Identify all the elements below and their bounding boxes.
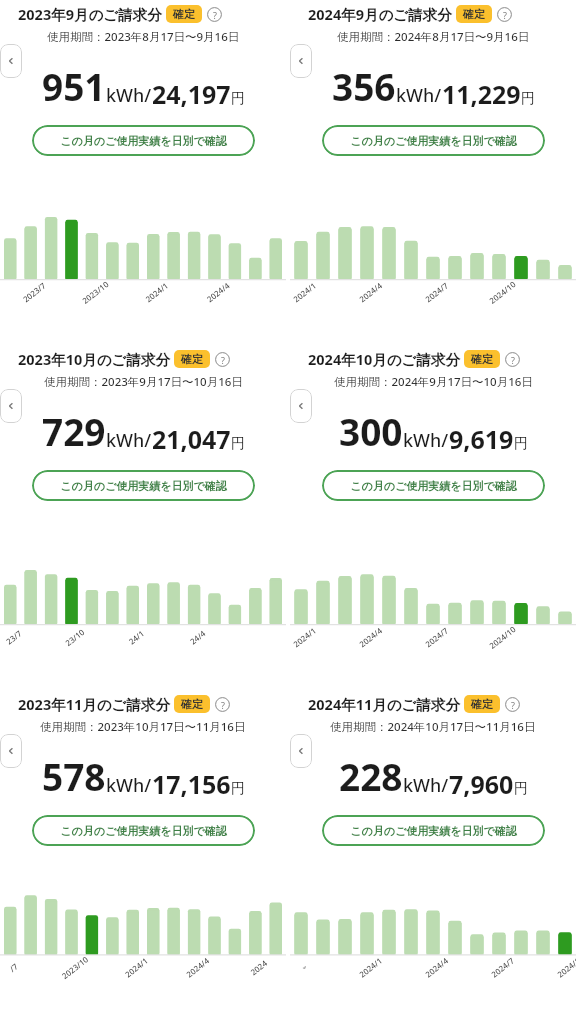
button[interactable]: 確定 — [464, 350, 500, 368]
button[interactable]: ヘルプ — [497, 7, 512, 22]
staticText: 円 — [521, 90, 535, 108]
button[interactable]: 前へ — [0, 734, 22, 768]
button[interactable]: この月のご使用実績を日別で確認 — [322, 470, 545, 501]
staticText: この月のご使用実績を日別で確認 — [60, 824, 227, 838]
button[interactable]: 前へ — [0, 389, 22, 423]
button[interactable]: この月のご使用実績を日別で確認 — [32, 125, 255, 156]
button[interactable]: この月のご使用実績を日別で確認 — [32, 815, 255, 846]
staticText: kWh/ — [106, 773, 152, 798]
staticText: 使用期間：2024年10月17日〜11月16日 — [330, 719, 536, 735]
staticText: 9,619 — [449, 422, 514, 456]
staticText: kWh/ — [403, 428, 449, 453]
staticText: 2023年10月のご請求分 — [18, 349, 170, 369]
button[interactable]: 確定 — [464, 695, 500, 713]
staticText: 円 — [231, 90, 245, 108]
staticText: この月のご使用実績を日別で確認 — [350, 134, 517, 148]
button[interactable]: 前へ — [290, 734, 312, 768]
staticText: 確定 — [181, 352, 203, 366]
staticText: 円 — [231, 780, 245, 798]
button[interactable]: 前へ — [290, 44, 312, 78]
button[interactable]: この月のご使用実績を日別で確認 — [32, 470, 255, 501]
staticText: 11,229 — [442, 77, 521, 111]
staticText: 確定 — [173, 7, 195, 21]
staticText: この月のご使用実績を日別で確認 — [60, 479, 227, 493]
staticText: kWh/ — [106, 428, 152, 453]
staticText: 確定 — [471, 352, 493, 366]
staticText: 228 — [339, 751, 403, 801]
staticText: ? — [511, 354, 515, 366]
staticText: kWh/ — [403, 773, 449, 798]
button[interactable]: 前へ — [0, 44, 22, 78]
staticText: 2024年9月のご請求分 — [308, 4, 452, 24]
button[interactable]: ヘルプ — [215, 352, 230, 367]
staticText: ? — [221, 699, 225, 711]
button[interactable]: 確定 — [174, 350, 210, 368]
staticText: 300 — [339, 406, 403, 456]
button[interactable]: ヘルプ — [215, 697, 230, 712]
button[interactable]: この月のご使用実績を日別で確認 — [322, 125, 545, 156]
staticText: 2023年11月のご請求分 — [18, 694, 170, 714]
staticText: この月のご使用実績を日別で確認 — [350, 479, 517, 493]
staticText: ? — [511, 699, 515, 711]
staticText: 使用期間：2024年9月17日〜10月16日 — [334, 374, 533, 390]
staticText: ? — [221, 354, 225, 366]
staticText: ? — [503, 9, 507, 21]
button[interactable]: 前へ — [290, 389, 312, 423]
staticText: 確定 — [181, 697, 203, 711]
staticText: 2024年11月のご請求分 — [308, 694, 460, 714]
staticText: 使用期間：2023年8月17日〜9月16日 — [47, 29, 240, 45]
button[interactable]: 確定 — [174, 695, 210, 713]
staticText: 確定 — [463, 7, 485, 21]
staticText: 17,156 — [152, 767, 231, 801]
button[interactable]: 確定 — [456, 5, 492, 23]
staticText: 21,047 — [152, 422, 231, 456]
staticText: 確定 — [471, 697, 493, 711]
staticText: kWh/ — [396, 83, 442, 108]
button[interactable]: ヘルプ — [207, 7, 222, 22]
staticText: 7,960 — [449, 767, 514, 801]
staticText: ? — [213, 9, 217, 21]
button[interactable]: ヘルプ — [505, 352, 520, 367]
staticText: 使用期間：2024年8月17日〜9月16日 — [337, 29, 530, 45]
staticText: 使用期間：2023年10月17日〜11月16日 — [40, 719, 246, 735]
staticText: 2024年10月のご請求分 — [308, 349, 460, 369]
button[interactable]: この月のご使用実績を日別で確認 — [322, 815, 545, 846]
staticText: この月のご使用実績を日別で確認 — [60, 134, 227, 148]
staticText: 951 — [42, 61, 106, 111]
staticText: 使用期間：2023年9月17日〜10月16日 — [44, 374, 243, 390]
staticText: 24,197 — [152, 77, 231, 111]
button[interactable]: 確定 — [166, 5, 202, 23]
button[interactable]: ヘルプ — [505, 697, 520, 712]
staticText: 578 — [42, 751, 106, 801]
staticText: 円 — [231, 435, 245, 453]
staticText: kWh/ — [106, 83, 152, 108]
staticText: 2023年9月のご請求分 — [18, 4, 162, 24]
staticText: 円 — [514, 780, 528, 798]
staticText: 729 — [42, 406, 106, 456]
staticText: この月のご使用実績を日別で確認 — [350, 824, 517, 838]
staticText: 円 — [514, 435, 528, 453]
staticText: 356 — [332, 61, 396, 111]
